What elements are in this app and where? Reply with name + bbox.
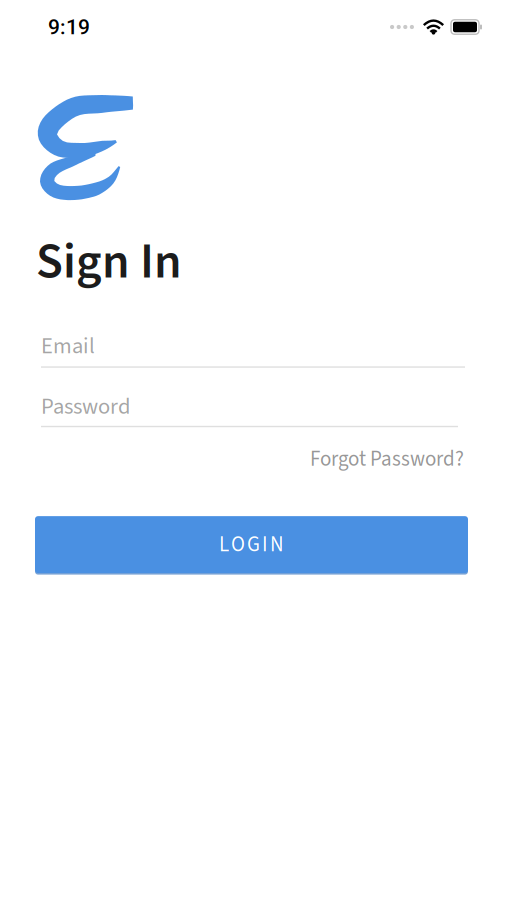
button[interactable]: Email — [37, 330, 468, 368]
staticText: Sign In — [36, 227, 182, 297]
staticText: Email — [41, 330, 95, 362]
staticText: Password — [41, 391, 131, 423]
staticText: 9:19 — [48, 15, 90, 39]
staticText: LOGIN — [219, 530, 284, 560]
button[interactable]: Forgot Password? — [310, 444, 464, 474]
staticText: Forgot Password? — [310, 444, 464, 474]
button[interactable]: LOGIN — [35, 516, 468, 573]
button[interactable]: Password — [37, 391, 468, 427]
